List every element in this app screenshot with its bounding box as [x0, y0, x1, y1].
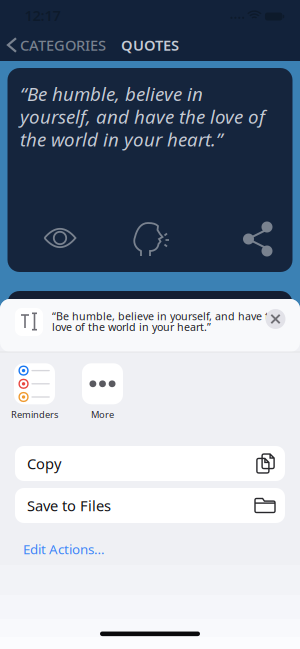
button[interactable]: Share: [237, 218, 279, 260]
button[interactable]: CATEGORIES: [8, 31, 106, 59]
staticText: yourself, and have the love of: [20, 104, 265, 129]
staticText: “Be humble, believe in yourself, and hav…: [52, 309, 282, 323]
staticText: CATEGORIES: [20, 35, 106, 55]
staticText: Copy: [27, 454, 61, 473]
staticText: Save to Files: [27, 496, 111, 515]
staticText: “Be humble, believe in: [20, 81, 203, 106]
staticText: Reminders: [11, 408, 58, 421]
staticText: Edit Actions…: [23, 540, 105, 558]
staticText: 12:17: [24, 6, 60, 25]
staticText: the world in your heart.”: [20, 127, 223, 152]
button[interactable]: Reminders: [11, 363, 58, 421]
button[interactable]: More: [82, 363, 123, 421]
button[interactable]: View: [36, 221, 83, 255]
button[interactable]: Save to Files: [15, 488, 285, 523]
staticText: love of the world in your heart.”: [52, 320, 211, 334]
staticText: More: [91, 408, 114, 421]
button[interactable]: Copy: [15, 446, 285, 481]
staticText: QUOTES: [121, 35, 179, 55]
button[interactable]: Edit Actions…: [23, 536, 105, 562]
button[interactable]: Close: [265, 309, 285, 329]
button[interactable]: Speak: [127, 217, 173, 261]
